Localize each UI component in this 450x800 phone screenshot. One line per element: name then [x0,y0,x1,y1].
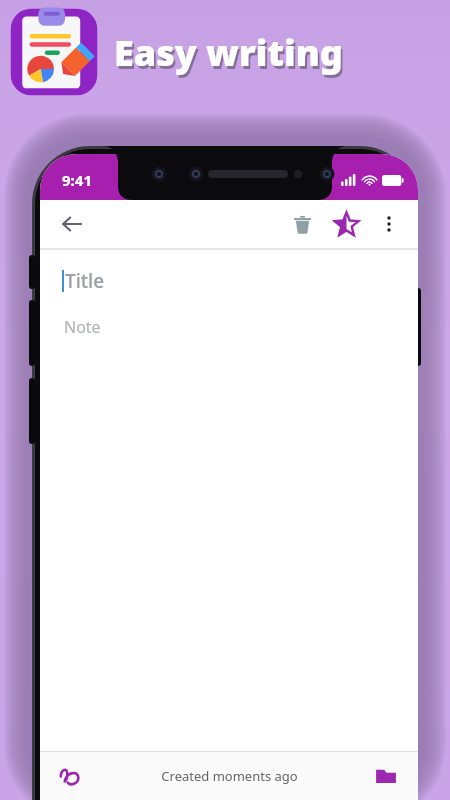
button[interactable]: Favorite [324,202,368,246]
button[interactable]: More options [368,203,410,245]
staticText: Easy writing [114,28,343,77]
staticText: Created moments ago [161,767,298,785]
button[interactable]: Handwriting [48,754,92,798]
staticText: Easy writing [116,31,345,80]
staticText: 9:41 [62,170,92,190]
button[interactable]: Back [52,204,92,244]
button[interactable]: Delete [280,202,324,246]
button[interactable]: Folder [364,754,408,798]
staticText: Note [64,316,101,338]
staticText: Title [65,268,105,294]
